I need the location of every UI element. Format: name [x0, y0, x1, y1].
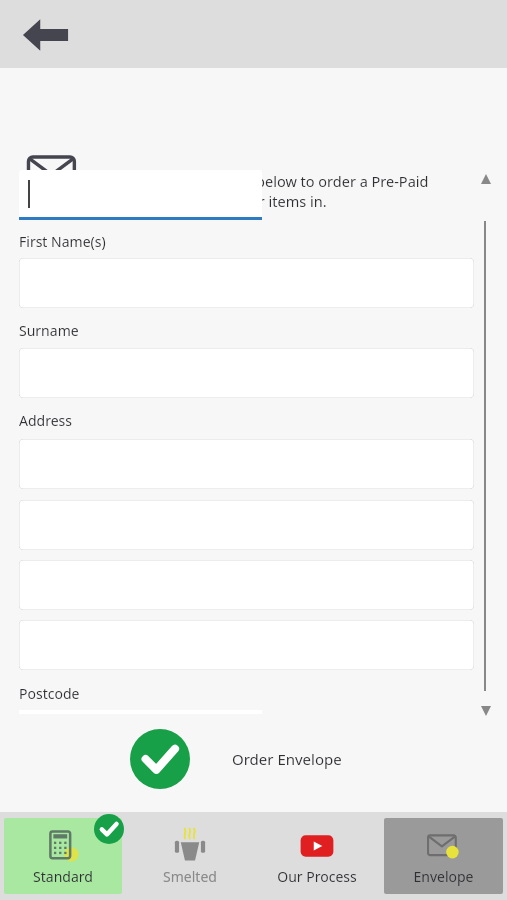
button[interactable] — [19, 348, 474, 398]
button[interactable] — [19, 620, 474, 670]
button[interactable]: Order Envelope — [130, 726, 342, 792]
button[interactable] — [19, 500, 474, 550]
staticText: First Name(s) — [19, 232, 106, 251]
staticText: Order Envelope — [232, 749, 342, 769]
button[interactable] — [19, 258, 474, 308]
button[interactable]: Smelted — [130, 818, 249, 894]
button[interactable] — [19, 170, 262, 218]
staticText: Our Process — [277, 867, 357, 886]
button[interactable] — [19, 560, 474, 610]
staticText: Complete your details below to order a P… — [103, 171, 483, 211]
staticText: Address — [19, 411, 72, 430]
button[interactable]: Envelope — [384, 818, 503, 894]
button[interactable] — [19, 439, 474, 489]
staticText: Envelope — [413, 867, 474, 886]
button[interactable]: Our Process — [257, 818, 376, 894]
staticText: Standard — [33, 867, 93, 886]
button[interactable]: Standard — [4, 818, 122, 894]
staticText: Surname — [19, 321, 79, 340]
button[interactable]: Back — [18, 14, 74, 56]
staticText: Smelted — [163, 867, 217, 886]
staticText: Postcode — [19, 684, 80, 703]
